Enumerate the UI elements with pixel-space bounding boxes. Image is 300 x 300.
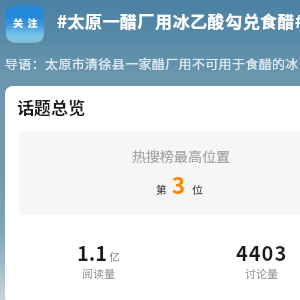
staticText: 1.1 xyxy=(77,238,108,267)
button[interactable]: 1.1 xyxy=(17,238,180,283)
staticText: 亿 xyxy=(109,248,120,264)
button[interactable]: #太原一醋厂用冰乙酸勾兑食醋# xyxy=(57,8,300,33)
staticText: 位 xyxy=(192,181,203,197)
staticText: 3 xyxy=(172,168,185,200)
staticText: 导语：太原市清徐县一家醋厂用不可用于食醋的冰乙酸 xyxy=(5,54,300,73)
staticText: 阅读量 xyxy=(82,265,115,281)
staticText: 4403 xyxy=(236,238,288,267)
staticText: 讨论量 xyxy=(245,265,278,281)
staticText: 热搜榜最高位置 xyxy=(19,146,300,166)
button[interactable]: Topic avatar xyxy=(6,5,44,43)
button[interactable]: 话题总览 xyxy=(17,94,85,119)
staticText: 第 xyxy=(156,181,167,197)
button[interactable]: 4403 xyxy=(180,238,300,283)
staticText: 关 注 xyxy=(13,15,38,29)
